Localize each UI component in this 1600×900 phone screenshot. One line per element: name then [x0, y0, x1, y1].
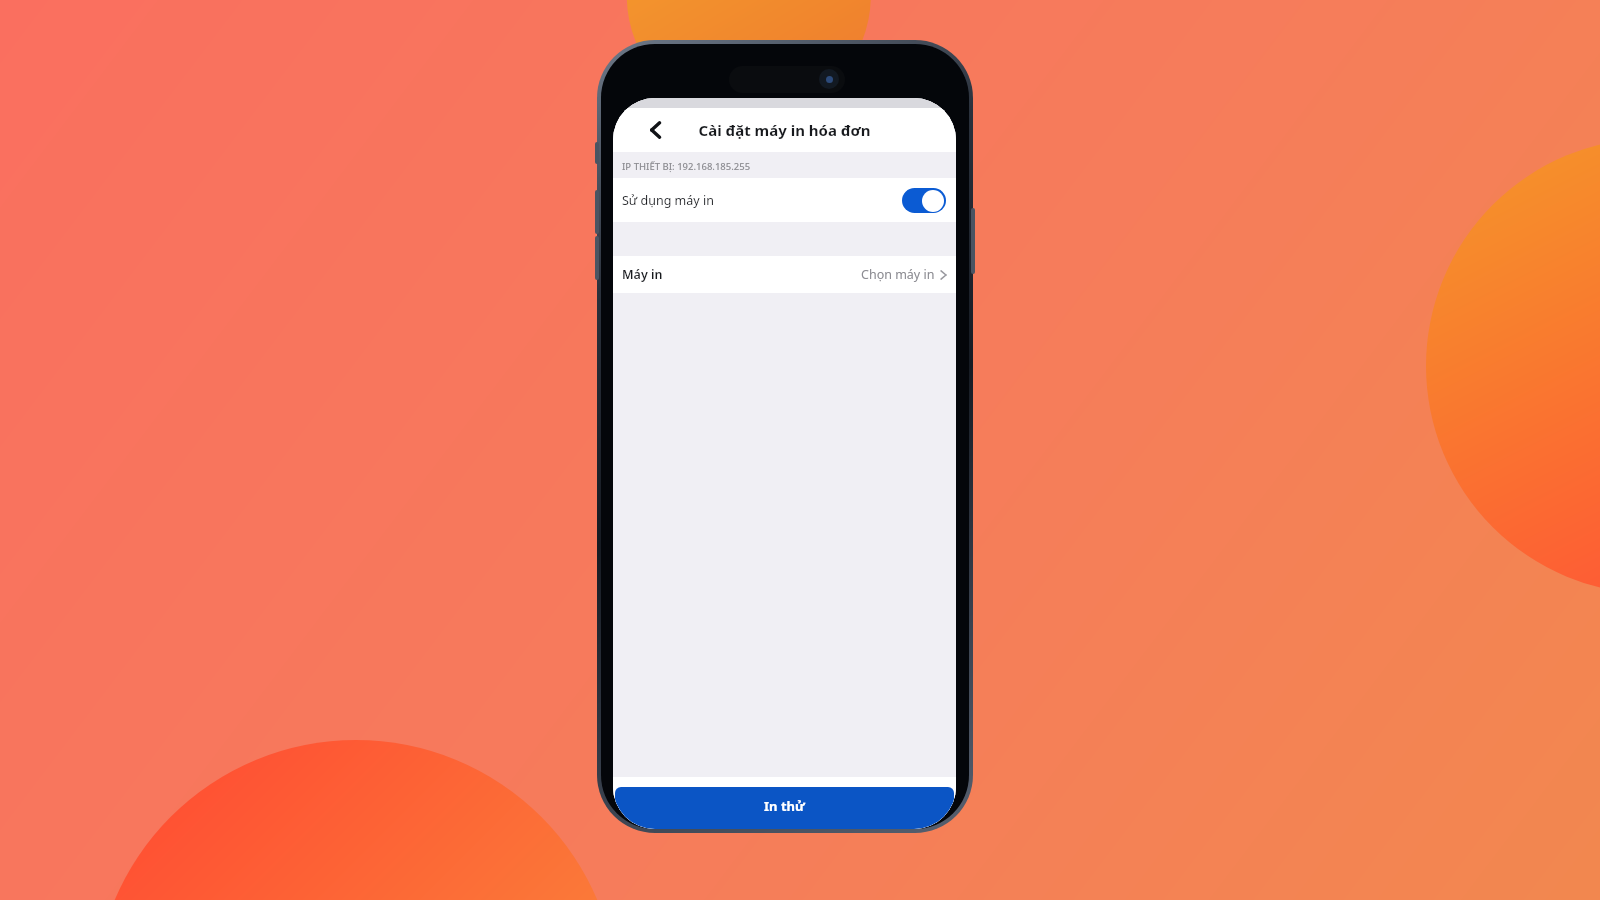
button[interactable]: Use printer toggle [902, 188, 946, 213]
staticText: Sử dụng máy in [622, 192, 714, 209]
staticText: Chọn máy in [861, 266, 935, 283]
button[interactable]: In thử [615, 787, 954, 829]
staticText: IP THIẾT BỊ: 192.168.185.255 [622, 160, 751, 173]
button[interactable]: Sử dụng máy in [613, 178, 956, 222]
button[interactable]: Máy in [613, 256, 956, 293]
staticText: In thử [764, 797, 805, 815]
staticText: Cài đặt máy in hóa đơn [613, 120, 956, 140]
staticText: Máy in [622, 266, 663, 283]
button[interactable]: Back [639, 113, 673, 147]
